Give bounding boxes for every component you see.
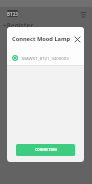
staticText: BT23 xyxy=(7,11,18,17)
staticText: +Register xyxy=(3,21,34,30)
button[interactable]: Close xyxy=(71,33,83,45)
button[interactable]: MAWKT_BT21_9400003 xyxy=(7,50,84,66)
button[interactable]: Menu xyxy=(77,8,90,21)
button[interactable]: BT23 xyxy=(7,10,18,17)
button[interactable]: CONNECTION xyxy=(16,144,75,156)
staticText: MAWKT_BT21_9400003 xyxy=(22,55,69,61)
staticText: Connect Mood Lamp xyxy=(12,35,71,43)
staticText: CONNECTION xyxy=(35,148,57,152)
